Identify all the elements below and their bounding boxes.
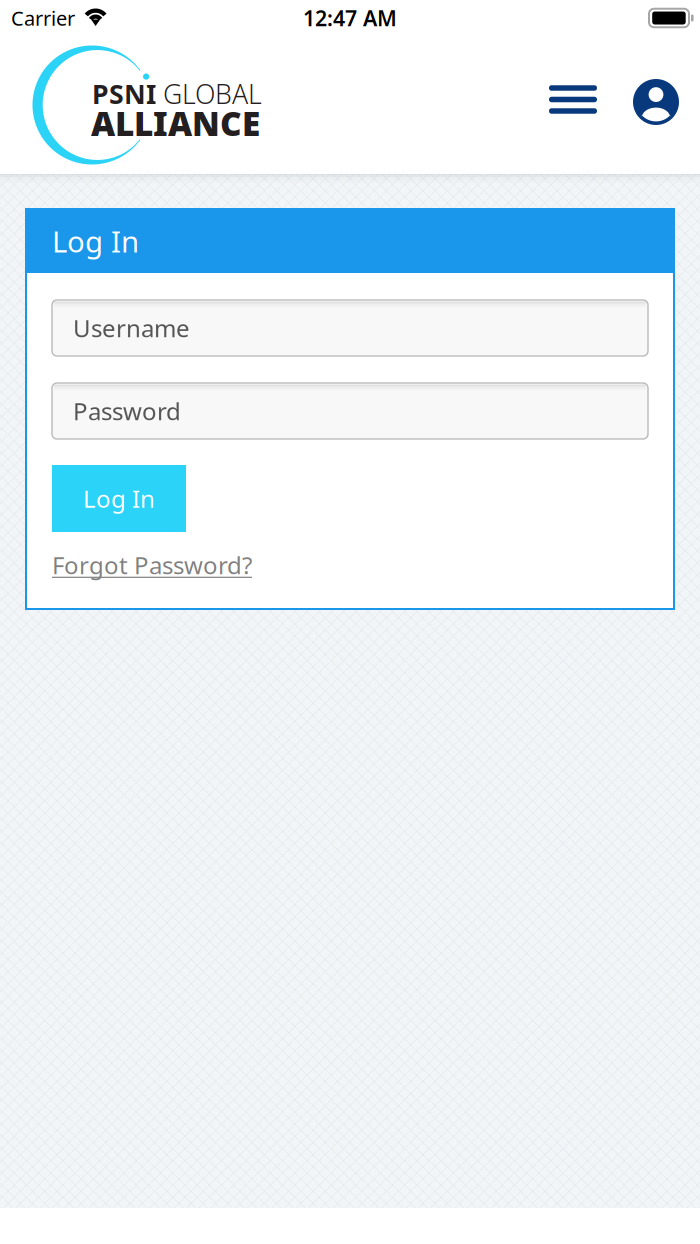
button[interactable]: Log In: [52, 465, 186, 532]
button[interactable]: Forgot Password?: [52, 549, 252, 581]
button[interactable]: Log In: [26, 209, 674, 273]
staticText: ALLIANCE: [91, 101, 260, 145]
button[interactable]: Menu: [539, 71, 607, 128]
staticText: Carrier: [11, 5, 75, 31]
staticText: PSNI: [92, 76, 156, 111]
staticText: Log In: [83, 483, 155, 514]
staticText: GLOBAL: [156, 76, 262, 111]
button[interactable]: Username: [52, 300, 648, 356]
staticText: 12:47 AM: [303, 4, 397, 32]
staticText: Password: [73, 395, 181, 427]
staticText: Log In: [52, 221, 139, 260]
button[interactable]: Account: [623, 69, 689, 135]
staticText: Forgot Password?: [52, 549, 252, 581]
staticText: Username: [73, 312, 190, 344]
button[interactable]: Password: [52, 383, 648, 439]
